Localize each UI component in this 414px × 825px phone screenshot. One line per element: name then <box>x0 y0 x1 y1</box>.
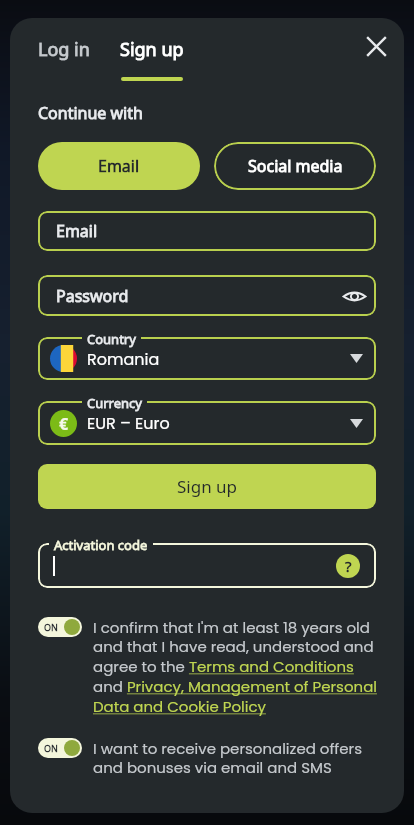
button[interactable]: Email <box>38 142 200 190</box>
staticText: Email <box>56 220 98 242</box>
staticText: ? <box>345 556 352 576</box>
button[interactable]: € <box>38 401 376 445</box>
staticText: I confirm that I'm at least 18 years old… <box>93 617 383 718</box>
button[interactable]: Toggle on <box>38 738 82 758</box>
button[interactable]: Toggle on <box>38 617 82 637</box>
button[interactable]: Log in <box>10 37 94 62</box>
button[interactable]: Close <box>353 23 399 69</box>
staticText: Social media <box>248 155 343 177</box>
staticText: Password <box>56 285 129 307</box>
staticText: Log in <box>38 37 90 62</box>
staticText: Sign up <box>120 37 184 62</box>
staticText: EUR – Euro <box>87 412 170 434</box>
staticText: Activation code <box>54 536 148 554</box>
staticText: € <box>59 413 69 435</box>
staticText: Continue with <box>38 102 143 124</box>
staticText: Currency <box>87 394 142 412</box>
button[interactable]: Social media <box>214 142 376 190</box>
staticText: I want to receive personalized offers an… <box>93 738 383 779</box>
button[interactable]: Romania <box>38 337 376 380</box>
staticText: Romania <box>87 348 160 370</box>
button[interactable]: Password <box>38 275 376 316</box>
staticText: ON <box>44 742 58 754</box>
button[interactable]: Email <box>38 211 376 251</box>
staticText: ON <box>44 621 58 633</box>
button[interactable]: Help <box>336 554 360 578</box>
button[interactable]: Show password <box>342 284 366 308</box>
staticText: Email <box>98 155 140 177</box>
button[interactable]: Sign up <box>120 37 184 81</box>
button[interactable]: Sign up <box>38 464 376 509</box>
button[interactable]: Help <box>38 543 376 588</box>
staticText: Country <box>87 330 136 348</box>
staticText: Sign up <box>177 475 238 498</box>
